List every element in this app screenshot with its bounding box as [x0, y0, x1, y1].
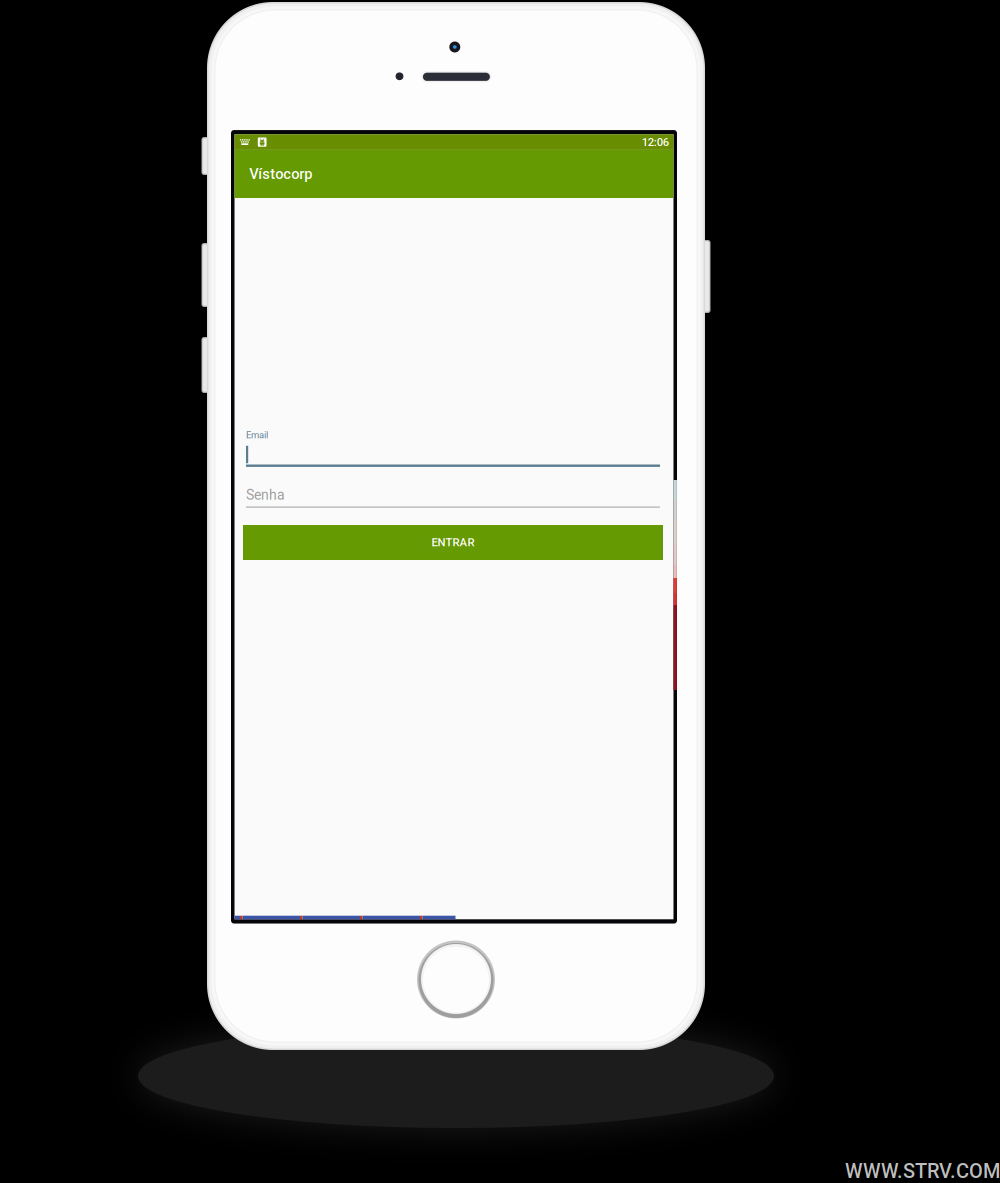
staticText: ENTRAR: [431, 536, 474, 549]
staticText: WWW.STRV.COM: [845, 1160, 1000, 1183]
staticText: 12:06: [642, 135, 669, 149]
staticText: Email: [246, 429, 268, 440]
staticText: Vístocorp: [249, 165, 312, 183]
button[interactable]: ENTRAR: [243, 525, 663, 560]
staticText: Senha: [246, 487, 285, 503]
